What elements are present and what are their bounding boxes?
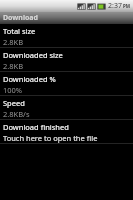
staticText: 2.8KB bbox=[3, 37, 24, 47]
staticText: Speed bbox=[3, 98, 25, 108]
other: Battery bbox=[97, 2, 106, 11]
button[interactable]: Total size bbox=[0, 24, 133, 47]
staticText: Download bbox=[3, 13, 38, 23]
staticText: 2:37 bbox=[108, 1, 122, 11]
button[interactable]: Download finished bbox=[0, 120, 133, 143]
staticText: 100% bbox=[3, 85, 23, 95]
button[interactable]: Downloaded % bbox=[0, 72, 133, 95]
other: Mobile signal bbox=[87, 2, 96, 11]
other: Network signal bbox=[77, 2, 86, 11]
staticText: Downloaded % bbox=[3, 74, 56, 84]
staticText: PM bbox=[123, 3, 131, 9]
staticText: Download finished bbox=[3, 122, 69, 132]
staticText: Touch here to open the file bbox=[3, 133, 98, 143]
button[interactable]: Speed bbox=[0, 96, 133, 119]
staticText: 2.8KB/s bbox=[3, 109, 30, 119]
staticText: Downloaded size bbox=[3, 50, 63, 60]
button[interactable]: Downloaded size bbox=[0, 48, 133, 71]
staticText: 2.8KB bbox=[3, 61, 24, 71]
staticText: Total size bbox=[3, 26, 36, 36]
